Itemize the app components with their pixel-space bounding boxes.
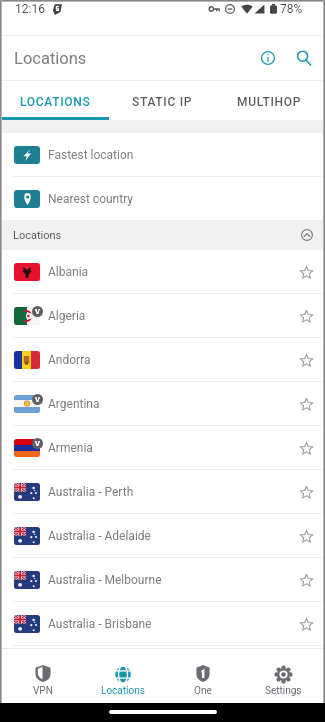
button[interactable]: Favorite	[289, 563, 323, 597]
button[interactable]: Australia - Perth	[2, 470, 323, 513]
button[interactable]: Australia - Melbourne	[2, 558, 323, 601]
button[interactable]: Andorra	[2, 338, 323, 381]
button[interactable]: Favorite	[289, 255, 323, 289]
staticText: One	[194, 685, 212, 697]
button[interactable]: Australia - Brisbane	[2, 602, 323, 645]
staticText: Fastest location	[48, 148, 134, 162]
button[interactable]: Favorite	[289, 343, 323, 377]
staticText: Locations	[14, 49, 87, 68]
staticText: V	[35, 307, 40, 316]
button[interactable]: Nearest country	[2, 177, 323, 220]
staticText: Algeria	[48, 309, 86, 323]
button[interactable]: Search	[286, 40, 322, 76]
button[interactable]: Fastest location	[2, 133, 323, 176]
staticText: STATIC IP	[132, 95, 193, 109]
staticText: Andorra	[48, 353, 91, 367]
button[interactable]: VPN	[2, 649, 83, 703]
button[interactable]: Locations	[83, 649, 163, 703]
staticText: LOCATIONS	[20, 95, 91, 109]
button[interactable]: Favorite	[289, 607, 323, 641]
staticText: Albania	[48, 265, 89, 279]
button[interactable]: One	[163, 649, 243, 703]
staticText: Australia - Perth	[48, 485, 134, 499]
button[interactable]: Australia - Adelaide	[2, 514, 323, 557]
button[interactable]: MULTIHOP	[216, 86, 323, 117]
button[interactable]: V	[2, 382, 323, 425]
staticText: Argentina	[48, 397, 100, 411]
button[interactable]: V	[2, 426, 323, 469]
staticText: Australia - Brisbane	[48, 617, 152, 631]
staticText: MULTIHOP	[237, 95, 302, 109]
staticText: 78%	[280, 2, 303, 16]
staticText: Locations	[13, 229, 62, 242]
button[interactable]: Favorite	[289, 387, 323, 421]
button[interactable]: STATIC IP	[109, 86, 216, 117]
button[interactable]: Info	[250, 40, 286, 76]
button[interactable]: Favorite	[289, 475, 323, 509]
staticText: Australia - Melbourne	[48, 573, 162, 587]
button[interactable]: Albania	[2, 250, 323, 293]
staticText: Settings	[265, 685, 302, 697]
button[interactable]: LOCATIONS	[2, 86, 109, 117]
button[interactable]: V	[2, 294, 323, 337]
staticText: Nearest country	[48, 192, 134, 206]
button[interactable]: Favorite	[289, 519, 323, 553]
staticText: V	[35, 395, 40, 404]
button[interactable]: Settings	[243, 649, 323, 703]
staticText: Armenia	[48, 441, 93, 455]
staticText: V	[35, 439, 40, 448]
button[interactable]: Collapse	[295, 223, 319, 247]
button[interactable]: Favorite	[289, 431, 323, 465]
staticText: Australia - Adelaide	[48, 529, 151, 543]
staticText: 12:16	[15, 2, 45, 16]
button[interactable]: Favorite	[289, 299, 323, 333]
staticText: VPN	[33, 685, 53, 697]
staticText: Locations	[101, 685, 145, 697]
